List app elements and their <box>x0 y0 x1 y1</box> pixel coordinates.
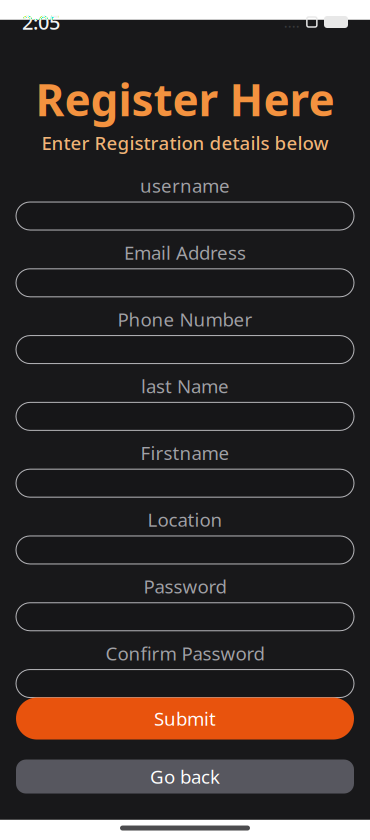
button[interactable]: Confirm Password <box>16 669 354 697</box>
button[interactable]: username <box>16 202 354 230</box>
button[interactable]: Go back <box>16 759 354 793</box>
staticText: Password <box>143 574 226 599</box>
button[interactable]: Phone Number <box>16 336 354 364</box>
staticText: Register Here <box>35 70 334 128</box>
staticText: Submit <box>154 706 216 731</box>
staticText: Go back <box>150 764 220 789</box>
staticText: username <box>140 173 230 198</box>
button[interactable]: Email Address <box>16 269 354 297</box>
staticText: 2:05 <box>22 9 60 35</box>
staticText: Location <box>147 507 222 532</box>
button[interactable]: Location <box>16 536 354 564</box>
button[interactable]: Submit <box>16 697 354 739</box>
button[interactable]: Firstname <box>16 469 354 497</box>
staticText: Email Address <box>124 240 246 265</box>
staticText: Confirm Password <box>105 641 264 666</box>
staticText: .... <box>284 12 300 32</box>
staticText: Phone Number <box>117 307 252 332</box>
staticText: Enter Registration details below <box>41 130 328 155</box>
staticText: last Name <box>141 374 229 398</box>
button[interactable]: Password <box>16 603 354 631</box>
button[interactable]: last Name <box>16 402 354 430</box>
staticText: Firstname <box>140 440 229 465</box>
